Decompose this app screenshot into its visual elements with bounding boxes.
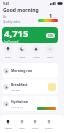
button[interactable]: Plans: [29, 120, 41, 129]
button[interactable]: More: [46, 45, 54, 58]
staticText: More: [47, 55, 53, 58]
staticText: Good morning: [3, 7, 39, 14]
button[interactable]: Profile: [43, 120, 55, 129]
button[interactable]: Hydration: [2, 96, 58, 111]
button[interactable]: Food: [4, 45, 12, 58]
staticText: 4,715: [4, 27, 29, 40]
staticText: Morning run: [11, 68, 33, 73]
staticText: Water: [33, 55, 40, 58]
staticText: Plans: [32, 126, 39, 129]
staticText: 9:41: [3, 2, 10, 6]
staticText: Sleep: [19, 55, 26, 58]
staticText: kcal burned: [4, 40, 19, 43]
staticText: 1.2 L of 2 L: [11, 105, 24, 108]
button[interactable]: 92%: [46, 33, 55, 38]
staticText: Air: [3, 15, 7, 19]
staticText: Breakfast: [11, 82, 28, 87]
staticText: Food: [5, 55, 11, 58]
button[interactable]: Breakfast: [2, 79, 58, 94]
button[interactable]: Stats: [16, 120, 28, 129]
button[interactable]: 4,715: [2, 27, 58, 43]
button[interactable]: Water: [32, 45, 40, 58]
staticText: Quality index: [3, 20, 21, 24]
staticText: Hydration: [11, 99, 28, 104]
button[interactable]: Morning run: [2, 63, 58, 78]
staticText: Profile: [45, 126, 53, 129]
staticText: 92%: [48, 34, 54, 38]
staticText: 1: [49, 12, 53, 19]
button[interactable]: Sleep: [18, 45, 26, 58]
button[interactable]: Home: [2, 120, 14, 129]
staticText: Home: [5, 126, 12, 129]
staticText: 320 kcal: [11, 88, 21, 91]
staticText: Stats: [19, 126, 25, 129]
